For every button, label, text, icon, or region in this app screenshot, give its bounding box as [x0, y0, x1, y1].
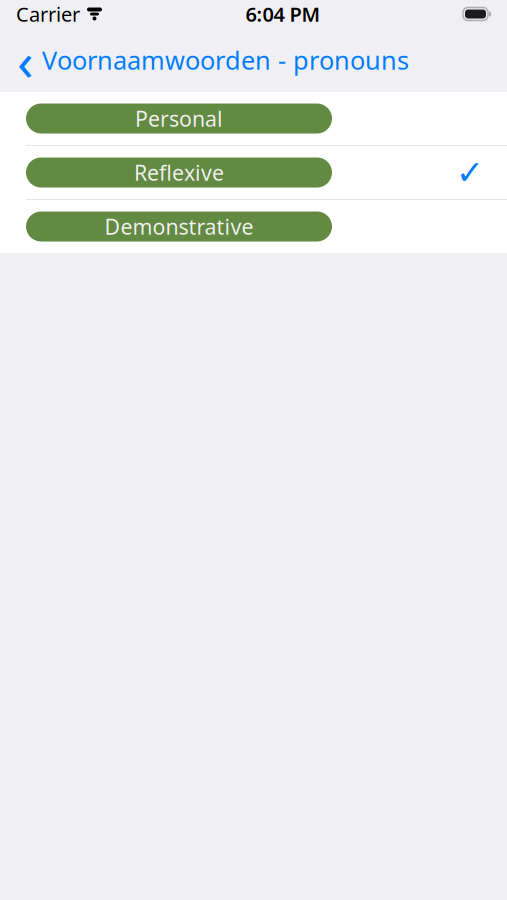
staticText: Demonstrative: [104, 212, 253, 241]
staticText: ‹: [17, 25, 34, 95]
staticText: Voornaamwoorden - pronouns: [42, 43, 409, 77]
staticText: 6:04 PM: [245, 1, 320, 27]
button[interactable]: Demonstrative: [0, 200, 507, 253]
button[interactable]: ‹: [0, 35, 409, 85]
staticText: Carrier: [16, 1, 80, 27]
button[interactable]: Personal: [0, 92, 507, 146]
staticText: Personal: [135, 104, 223, 133]
staticText: Reflexive: [134, 158, 224, 187]
staticText: ✓: [456, 154, 484, 191]
button[interactable]: Reflexive: [0, 146, 507, 200]
